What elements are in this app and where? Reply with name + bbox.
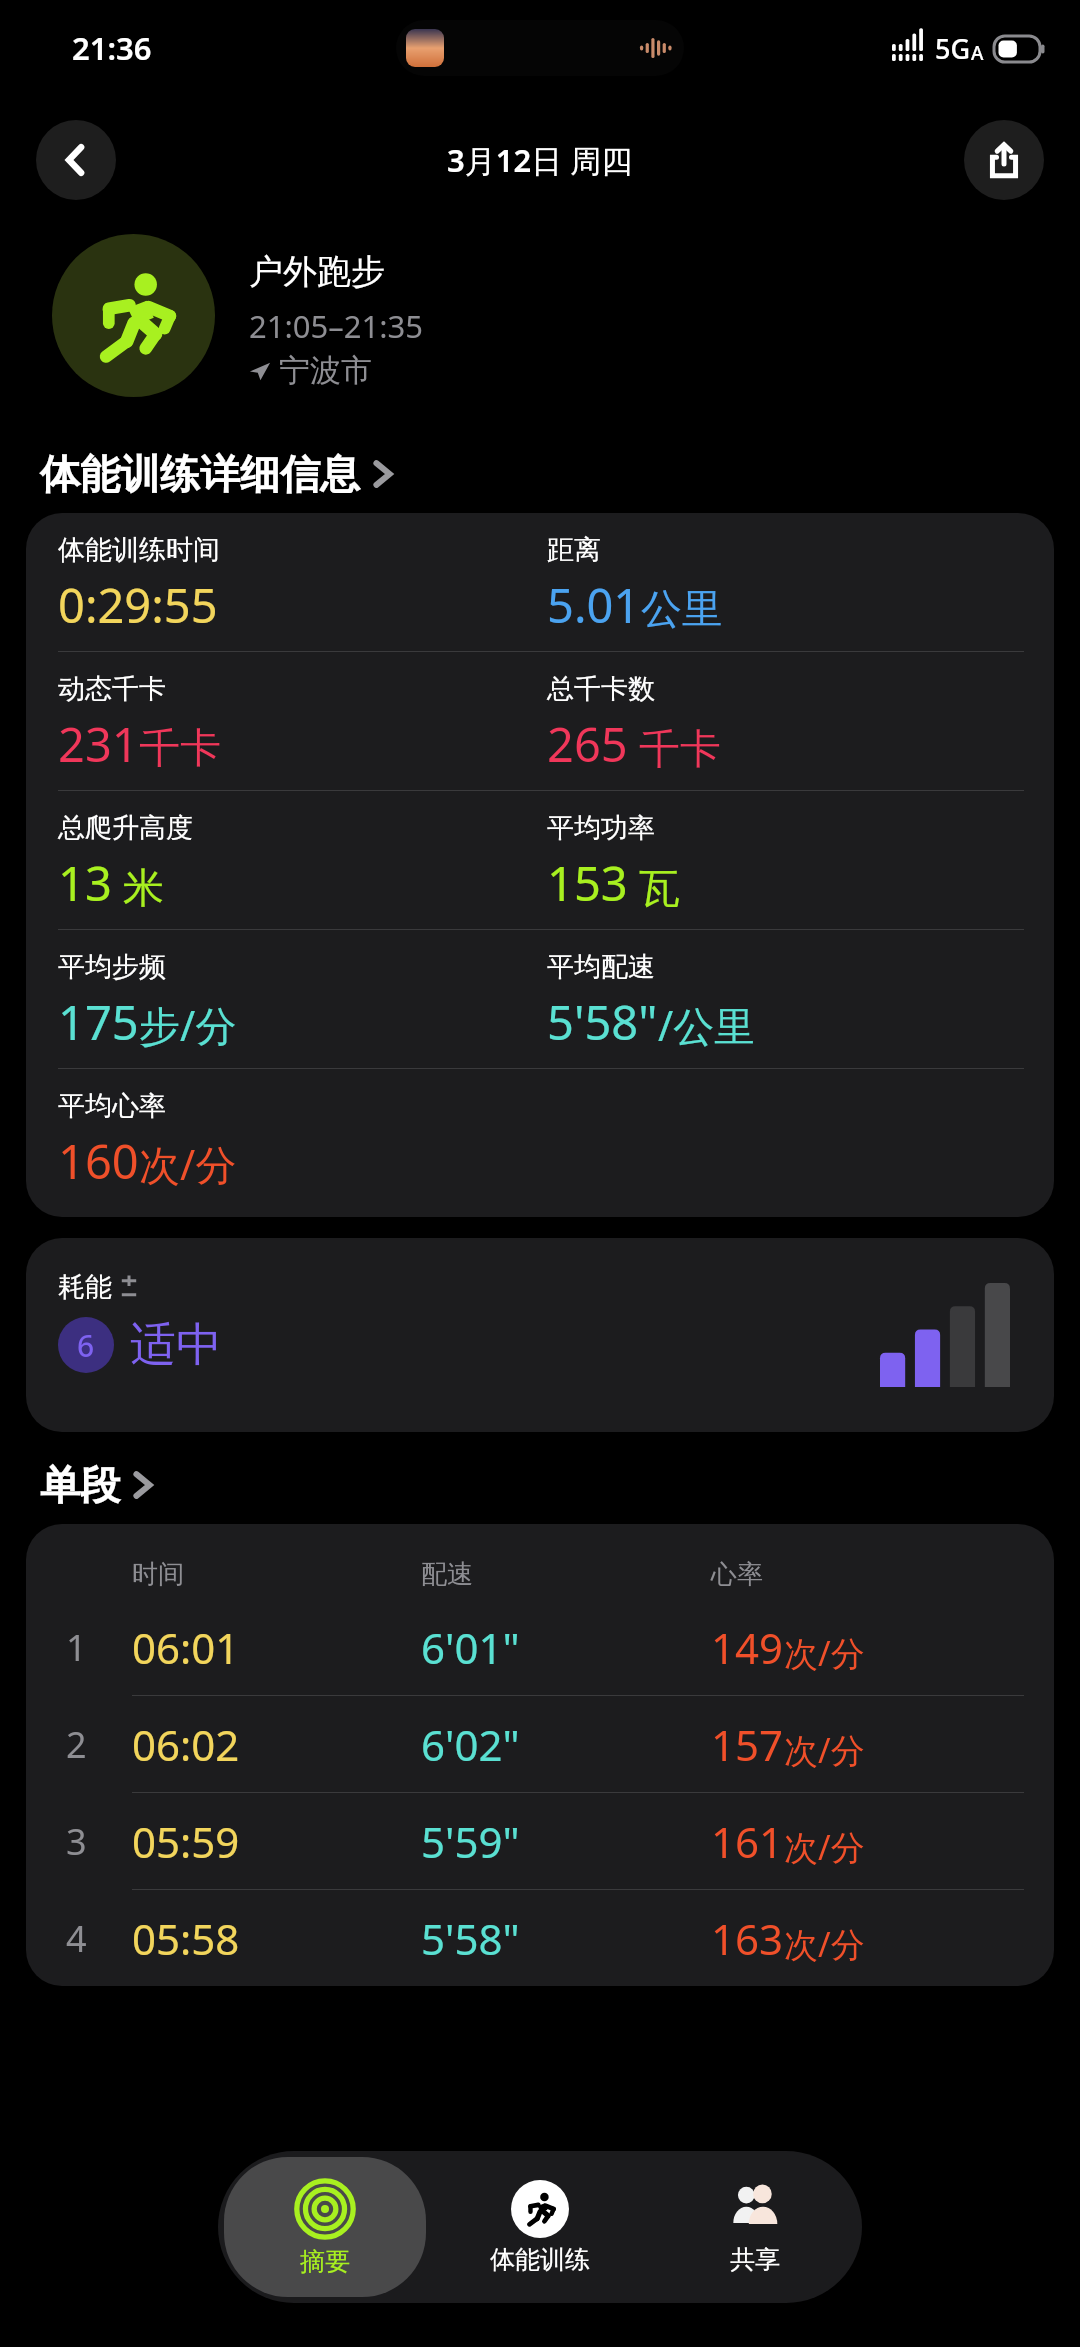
staticText: 千卡 xyxy=(628,719,721,775)
staticText: 157 xyxy=(711,1716,784,1773)
staticText: 06:02 xyxy=(132,1716,421,1773)
button[interactable]: 4 xyxy=(66,1890,1030,1986)
staticText: 05:58 xyxy=(132,1910,421,1967)
staticText: 心率 xyxy=(711,1558,1030,1591)
staticText: 163 xyxy=(711,1910,784,1967)
staticText: 6'02" xyxy=(421,1716,711,1773)
staticText: 3月12日 周四 xyxy=(447,139,633,181)
staticText: 平均功率 xyxy=(547,811,655,845)
staticText: 共享 xyxy=(730,2244,780,2275)
staticText: 宁波市 xyxy=(279,351,372,390)
staticText: 次/分 xyxy=(784,1824,865,1870)
staticText: 公里 xyxy=(641,584,723,636)
staticText: 231 xyxy=(58,712,139,776)
staticText: 3 xyxy=(66,1817,132,1866)
staticText: 步/分 xyxy=(139,997,237,1053)
staticText: 体能训练详细信息 xyxy=(40,449,360,499)
button[interactable]: 2 xyxy=(66,1696,1030,1792)
button[interactable]: 1 xyxy=(66,1599,1030,1695)
staticText: 总千卡数 xyxy=(547,672,655,706)
staticText: 体能训练 xyxy=(490,2244,590,2275)
staticText: 2 xyxy=(66,1720,132,1769)
button[interactable]: Back xyxy=(36,120,116,200)
staticText: 161 xyxy=(711,1813,784,1870)
staticText: 总爬升高度 xyxy=(58,811,193,845)
button[interactable]: 单段 xyxy=(40,1460,1080,1510)
staticText: 5.01 xyxy=(547,573,641,637)
staticText: 5G xyxy=(935,30,971,67)
staticText: 265 xyxy=(547,712,628,776)
button[interactable]: 共享 xyxy=(647,2151,862,2303)
staticText: 6 xyxy=(77,1325,95,1366)
staticText: 05:59 xyxy=(132,1813,421,1870)
staticText: 13 xyxy=(58,851,112,915)
staticText: 单段 xyxy=(40,1460,120,1510)
staticText: 户外跑步 xyxy=(249,250,385,293)
staticText: 5'58" xyxy=(547,990,658,1054)
button[interactable]: Share xyxy=(964,120,1044,200)
button[interactable]: 摘要 xyxy=(224,2157,426,2297)
staticText: 配速 xyxy=(421,1558,711,1591)
staticText: 距离 xyxy=(547,533,601,567)
button[interactable]: 3 xyxy=(66,1793,1030,1889)
staticText: 瓦 xyxy=(628,858,680,914)
staticText: 时间 xyxy=(132,1558,421,1591)
staticText: 动态千卡 xyxy=(58,672,166,706)
staticText: 1 xyxy=(66,1623,132,1672)
staticText: 149 xyxy=(711,1619,784,1676)
button[interactable]: 体能训练详细信息 xyxy=(40,449,1080,499)
staticText: 160 xyxy=(58,1129,139,1193)
button[interactable]: 体能训练 xyxy=(432,2151,647,2303)
staticText: 次/分 xyxy=(139,1136,237,1192)
staticText: 千卡 xyxy=(139,723,221,775)
staticText: 次/分 xyxy=(784,1727,865,1773)
staticText: 0:29:55 xyxy=(58,573,218,637)
staticText: 21:05–21:35 xyxy=(249,305,423,347)
button[interactable]: 耗能 xyxy=(26,1238,1054,1432)
staticText: 6'01" xyxy=(421,1619,711,1676)
staticText: 5'59" xyxy=(421,1813,711,1870)
staticText: 4 xyxy=(66,1914,132,1963)
staticText: 米 xyxy=(112,858,164,914)
staticText: 153 xyxy=(547,851,628,915)
staticText: A xyxy=(971,40,984,66)
staticText: 175 xyxy=(58,990,139,1054)
staticText: 5'58" xyxy=(421,1910,711,1967)
staticText: 适中 xyxy=(130,1316,222,1374)
staticText: 平均步频 xyxy=(58,950,166,984)
staticText: 06:01 xyxy=(132,1619,421,1676)
staticText: 次/分 xyxy=(784,1921,865,1967)
staticText: /公里 xyxy=(658,997,756,1053)
staticText: 体能训练时间 xyxy=(58,533,220,567)
staticText: 21:36 xyxy=(72,27,152,69)
staticText: 平均心率 xyxy=(58,1089,166,1123)
staticText: 次/分 xyxy=(784,1630,865,1676)
staticText: 摘要 xyxy=(300,2246,350,2277)
staticText: 耗能 xyxy=(58,1270,112,1304)
staticText: 平均配速 xyxy=(547,950,655,984)
